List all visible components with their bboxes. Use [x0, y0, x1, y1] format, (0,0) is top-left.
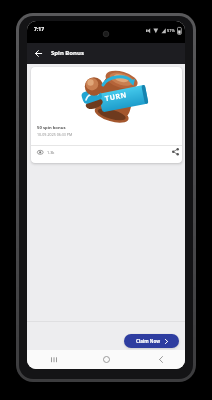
staticText: 51% [167, 28, 175, 33]
staticText: 7:17 [34, 26, 44, 33]
button[interactable] [153, 352, 168, 367]
staticText: Claim Now [136, 338, 161, 344]
button[interactable] [170, 146, 181, 157]
button[interactable]: TURN [31, 67, 182, 163]
staticText: Spin Bonus [51, 49, 84, 57]
button[interactable] [99, 352, 114, 367]
staticText: 10-09-2025 06:33 PM [37, 132, 73, 137]
button[interactable] [31, 46, 45, 61]
staticText: 1.3k [47, 150, 55, 155]
staticText: TURN [104, 90, 129, 104]
button[interactable] [46, 352, 61, 367]
staticText: 50 spin bonus [37, 125, 66, 131]
button[interactable]: Claim Now [124, 334, 179, 348]
